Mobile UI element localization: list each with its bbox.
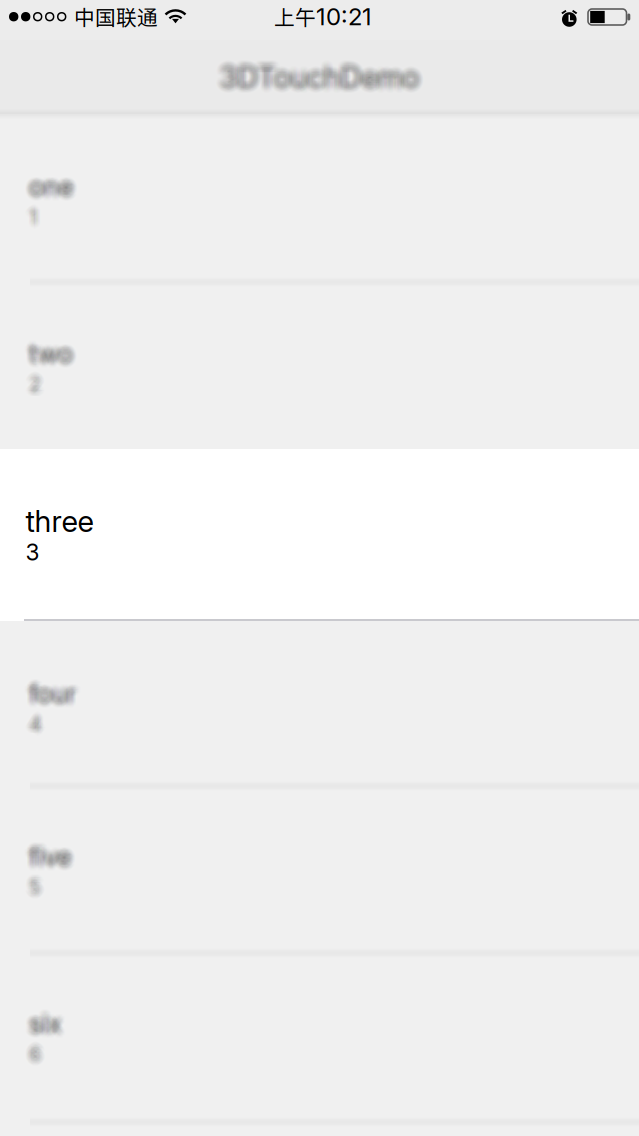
staticText: 2	[25, 374, 37, 398]
staticText: five	[24, 834, 66, 864]
staticText: 6	[27, 1039, 39, 1063]
staticText: 4	[22, 718, 35, 742]
staticText: one	[34, 171, 78, 202]
staticText: 5	[33, 872, 45, 896]
staticText: 2	[26, 368, 38, 392]
staticText: two	[31, 341, 75, 372]
staticText: 4	[29, 706, 42, 730]
staticText: 3DTouchDemo	[219, 59, 419, 95]
staticText: four	[29, 678, 76, 709]
staticText: 2	[28, 369, 40, 393]
staticText: two	[23, 339, 67, 370]
staticText: 4	[31, 705, 44, 729]
staticText: 2	[21, 369, 33, 393]
staticText: 1	[31, 209, 39, 233]
staticText: 3DTouchDemo	[221, 51, 421, 87]
staticText: 3DTouchDemo	[212, 58, 412, 94]
staticText: one	[26, 166, 70, 197]
staticText: two	[27, 342, 71, 373]
staticText: six	[21, 1004, 54, 1035]
staticText: five	[27, 847, 69, 878]
staticText: one	[29, 174, 73, 205]
staticText: five	[36, 844, 78, 875]
staticText: five	[32, 838, 74, 868]
staticText: 5	[33, 870, 45, 894]
staticText: one	[29, 169, 73, 199]
button[interactable]: one	[0, 114, 639, 281]
button[interactable]: three	[0, 449, 639, 621]
staticText: 3DTouchDemo	[226, 53, 426, 88]
staticText: one	[26, 169, 70, 200]
staticText: four	[31, 681, 78, 711]
staticText: four	[36, 683, 83, 714]
staticText: 3DTouchDemo	[223, 61, 423, 96]
staticText: six	[29, 1002, 62, 1033]
staticText: 4	[21, 709, 34, 734]
staticText: 3DTouchDemo	[219, 63, 419, 98]
staticText: four	[30, 681, 77, 711]
staticText: five	[30, 841, 72, 872]
staticText: one	[34, 179, 78, 209]
staticText: one	[31, 164, 75, 194]
staticText: four	[26, 681, 73, 712]
staticText: four	[26, 671, 73, 701]
staticText: four	[36, 676, 83, 706]
staticText: 4	[29, 713, 42, 737]
staticText: 2	[30, 371, 42, 395]
staticText: five	[36, 847, 78, 878]
staticText: five	[36, 836, 78, 867]
staticText: 3DTouchDemo	[219, 65, 419, 100]
staticText: one	[32, 172, 76, 203]
staticText: four	[35, 680, 82, 710]
staticText: one	[32, 168, 76, 198]
staticText: four	[36, 680, 83, 710]
staticText: 2	[33, 369, 45, 394]
staticText: four	[31, 681, 78, 712]
staticText: 3DTouchDemo	[223, 55, 423, 90]
staticText: four	[22, 685, 69, 715]
staticText: 5	[34, 871, 46, 895]
staticText: 2	[26, 369, 38, 394]
staticText: 5	[30, 881, 42, 905]
staticText: five	[34, 842, 76, 873]
staticText: four	[23, 682, 70, 713]
staticText: six	[31, 1014, 64, 1045]
button[interactable]: two	[0, 281, 639, 449]
staticText: 3DTouchDemo	[227, 62, 427, 97]
staticText: six	[26, 1003, 59, 1034]
staticText: 1	[31, 199, 39, 223]
staticText: 2	[32, 379, 44, 404]
staticText: 2	[36, 377, 48, 401]
staticText: 1	[22, 206, 30, 230]
button[interactable]: five	[0, 784, 639, 951]
staticText: 6	[30, 1049, 42, 1073]
staticText: one	[26, 174, 70, 204]
staticText: five	[27, 836, 69, 867]
staticText: 1	[26, 203, 34, 227]
staticText: two	[23, 331, 67, 362]
staticText: 1	[31, 202, 39, 227]
staticText: four	[21, 681, 68, 711]
staticText: 5	[36, 874, 48, 898]
staticText: 4	[31, 715, 44, 739]
staticText: 6	[35, 1040, 47, 1064]
staticText: six	[31, 1012, 64, 1043]
staticText: 6	[25, 1049, 37, 1074]
staticText: 1	[25, 208, 33, 232]
staticText: 1	[26, 212, 34, 237]
staticText: one	[24, 178, 68, 208]
staticText: five	[35, 847, 77, 878]
button[interactable]: four	[0, 621, 639, 784]
button[interactable]: six	[0, 951, 639, 1121]
staticText: two	[32, 338, 76, 369]
staticText: 2	[26, 374, 38, 398]
staticText: six	[32, 1004, 65, 1035]
staticText: 4	[36, 709, 49, 733]
staticText: one	[36, 172, 80, 203]
staticText: 6	[31, 1038, 43, 1062]
staticText: six	[36, 1006, 69, 1036]
staticText: 1	[22, 198, 30, 222]
staticText: 4	[33, 712, 46, 736]
staticText: six	[26, 1009, 59, 1040]
staticText: one	[25, 164, 69, 195]
